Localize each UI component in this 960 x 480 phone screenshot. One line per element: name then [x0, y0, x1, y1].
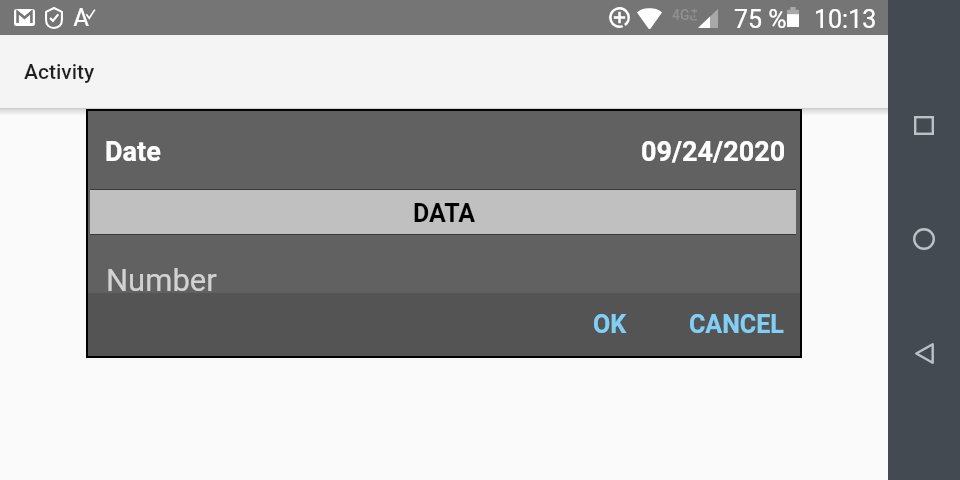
staticText: 75 % — [734, 5, 787, 34]
button[interactable]: Number — [88, 235, 800, 293]
staticText: Number — [106, 262, 217, 298]
staticText: Date — [105, 136, 161, 168]
staticText: DATA — [413, 199, 476, 228]
button[interactable]: Date — [88, 111, 800, 189]
button[interactable]: Home — [904, 219, 944, 259]
button[interactable]: DATA — [90, 190, 796, 234]
staticText: CANCEL — [689, 310, 784, 339]
button[interactable]: Back — [904, 333, 944, 373]
staticText: 10:13 — [814, 5, 877, 34]
button[interactable]: OK — [577, 300, 643, 349]
staticText: OK — [593, 310, 627, 339]
staticText: 4G — [672, 7, 690, 23]
button[interactable]: Recent apps — [904, 105, 944, 145]
staticText: 09/24/2020 — [641, 136, 786, 168]
button[interactable]: CANCEL — [673, 300, 800, 349]
staticText: A — [73, 4, 90, 26]
staticText: Activity — [24, 60, 95, 85]
